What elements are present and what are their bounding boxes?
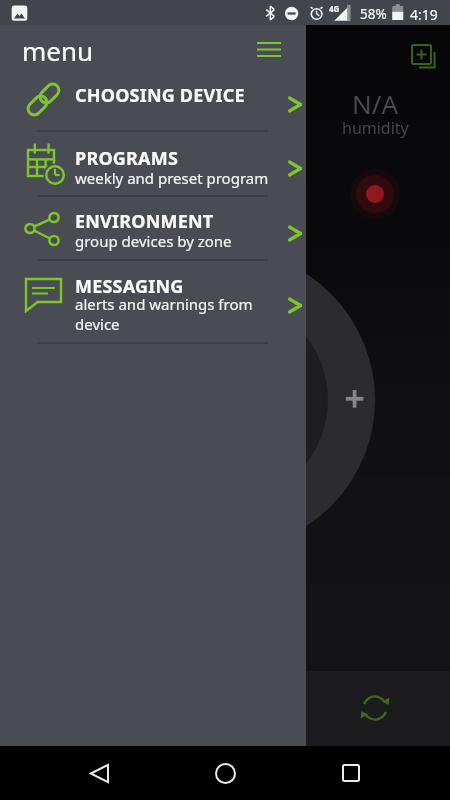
button[interactable]: MESSAGING [0,260,306,342]
button[interactable]: CHOOSING DEVICE [0,78,306,130]
staticText: 58% [360,5,387,23]
staticText: CHOOSING DEVICE [75,83,245,108]
button[interactable] [180,746,270,800]
button[interactable] [404,37,444,77]
staticText: menu [22,33,94,68]
button[interactable] [306,746,396,800]
button[interactable] [54,746,144,800]
staticText: MESSAGING [75,274,184,299]
staticText: 4:19 [410,5,438,24]
button[interactable]: PROGRAMS [0,131,306,195]
staticText: humidity [342,117,409,139]
staticText: PROGRAMS [75,146,179,171]
button[interactable]: ENVIRONMENT [0,196,306,259]
staticText: group devices by zone [75,231,232,251]
button[interactable] [247,32,291,68]
button[interactable] [332,376,376,420]
staticText: ENVIRONMENT [75,209,214,234]
staticText: alerts and warnings from device [75,294,275,334]
staticText: weekly and preset program [75,168,269,188]
button[interactable] [352,686,398,730]
button[interactable] [352,171,398,217]
staticText: 4G [329,3,340,14]
staticText: N/A [352,86,399,121]
